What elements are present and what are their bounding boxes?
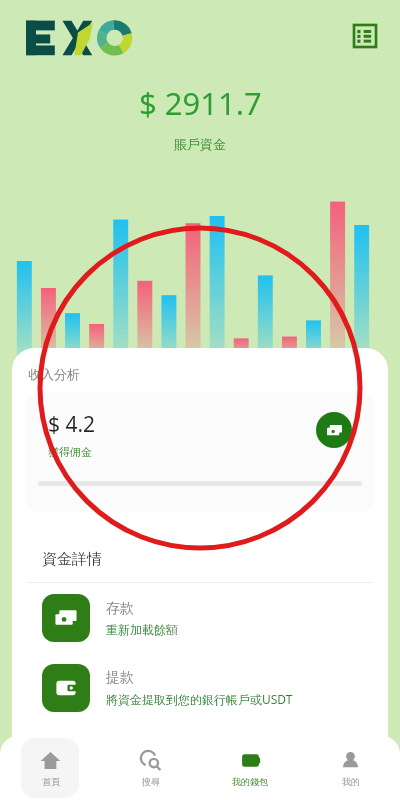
staticText: 資金詳情 <box>42 550 102 569</box>
button[interactable]: Income detail <box>316 412 352 448</box>
staticText: 獲得佣金 <box>48 445 92 459</box>
button[interactable]: 提款 <box>26 653 374 723</box>
staticText: 提款 <box>106 669 134 687</box>
staticText: 將資金提取到您的銀行帳戶或USDT <box>106 691 293 707</box>
staticText: 首頁 <box>42 776 60 787</box>
staticText: $ 4.2 <box>48 410 96 439</box>
button[interactable]: 我的 <box>300 736 400 800</box>
button[interactable]: 首頁 <box>0 736 100 800</box>
staticText: 賬戶資金 <box>174 136 226 152</box>
staticText: 我的 <box>342 776 360 787</box>
button[interactable]: 搜尋 <box>100 736 200 800</box>
staticText: 存款 <box>106 600 134 618</box>
staticText: 搜尋 <box>142 776 160 787</box>
button[interactable]: 存款 <box>26 583 374 653</box>
staticText: 收入分析 <box>28 366 80 382</box>
button[interactable]: Menu list <box>348 19 382 53</box>
staticText: 重新加載餘額 <box>106 622 178 637</box>
button[interactable]: $ 4.2 <box>26 392 374 512</box>
button[interactable]: 我的錢包 <box>200 736 300 800</box>
staticText: $ 2911.7 <box>139 82 262 124</box>
staticText: 我的錢包 <box>232 776 268 787</box>
